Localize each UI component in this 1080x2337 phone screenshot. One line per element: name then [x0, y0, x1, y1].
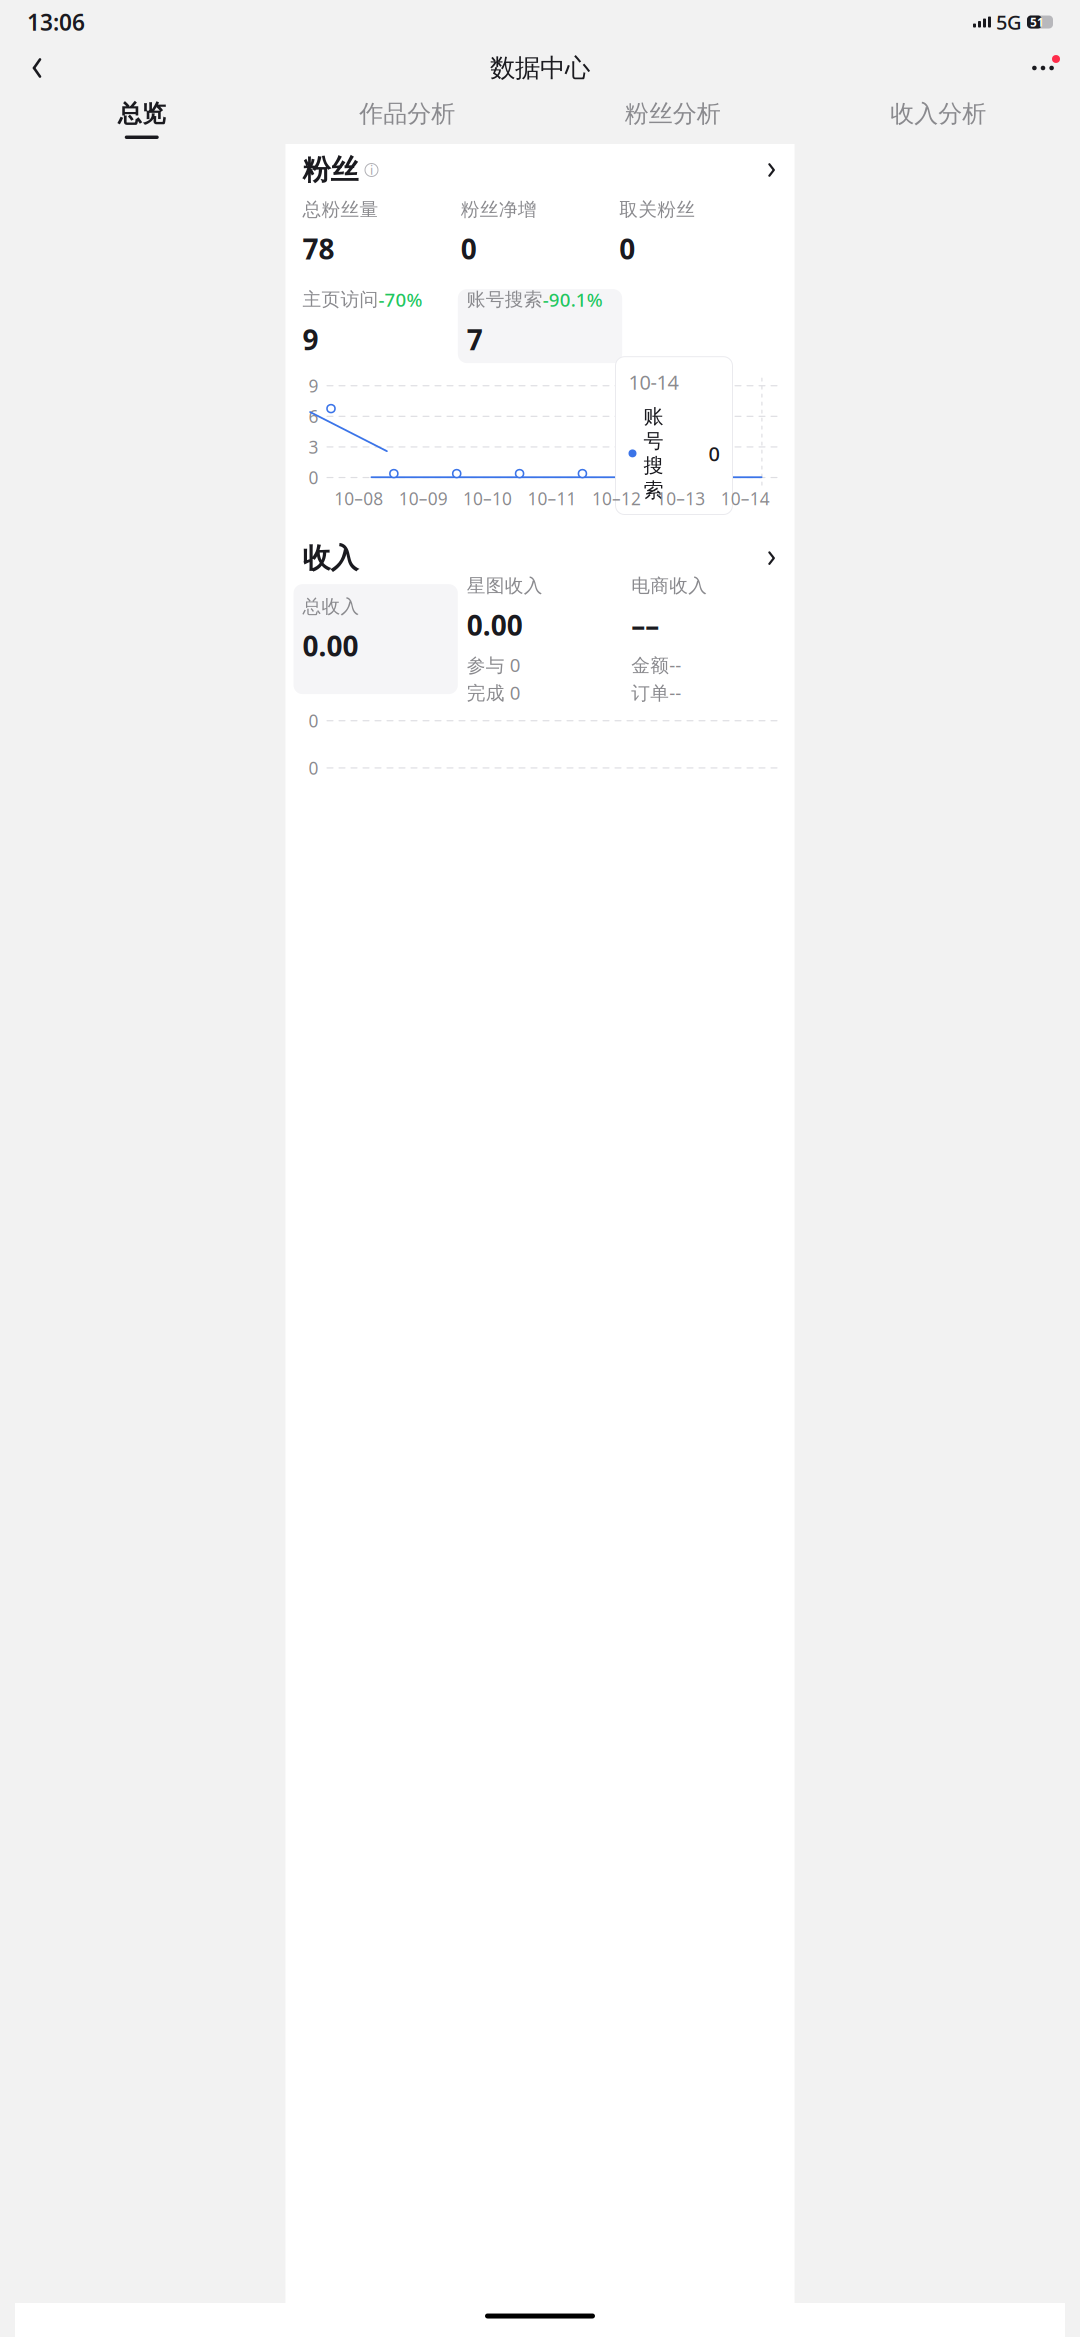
button[interactable]: 星图收入	[458, 584, 622, 694]
staticText: 0	[308, 709, 318, 732]
staticText: 账号搜索	[467, 288, 543, 311]
staticText: 0.00	[467, 606, 523, 643]
staticText: i	[370, 162, 373, 178]
staticText: 数据中心	[490, 52, 590, 83]
staticText: 星图收入	[467, 574, 543, 597]
staticText: 10–09	[399, 487, 448, 510]
staticText: 作品分析	[359, 99, 455, 128]
staticText: 订单--	[631, 680, 681, 705]
button[interactable]: 粉丝	[285, 148, 794, 192]
staticText: 总收入	[302, 595, 359, 618]
staticText: 9	[308, 374, 318, 397]
staticText: 0	[619, 230, 635, 267]
staticText: 9	[302, 321, 318, 358]
staticText: 0	[461, 230, 477, 267]
staticText: 收入	[302, 541, 358, 575]
staticText: 10–11	[527, 487, 576, 510]
staticText: 10–10	[463, 487, 512, 510]
staticText: 13:06	[27, 7, 85, 37]
staticText: 10-14	[628, 369, 678, 395]
staticText: -90.1%	[543, 287, 603, 312]
button[interactable]: 粉丝分析	[540, 92, 805, 144]
staticText: 3	[308, 435, 318, 458]
button[interactable]: 总收入	[293, 584, 458, 694]
staticText: 主页访问	[302, 288, 378, 311]
staticText: 10–08	[334, 487, 383, 510]
staticText: 总粉丝量	[302, 198, 378, 221]
staticText: 10–14	[721, 487, 770, 510]
button[interactable]: 作品分析	[274, 92, 540, 144]
staticText: 6	[308, 405, 318, 428]
staticText: 5G	[996, 9, 1022, 35]
staticText: 78	[302, 230, 334, 267]
staticText: 电商收入	[631, 574, 707, 597]
staticText: 51	[1030, 14, 1044, 30]
staticText: 7	[467, 321, 483, 358]
staticText: 收入分析	[890, 99, 986, 128]
staticText: 10–12	[592, 487, 641, 510]
button[interactable]: 主页访问	[293, 289, 458, 363]
button[interactable]: 收入分析	[805, 92, 1071, 144]
staticText: 粉丝分析	[625, 99, 721, 128]
staticText: 参与 0	[467, 652, 521, 677]
button[interactable]: 收入	[285, 536, 794, 580]
staticText: 完成 0	[467, 680, 521, 705]
staticText: 金额--	[631, 652, 681, 677]
button[interactable]: 电商收入	[622, 584, 786, 694]
staticText: 0	[708, 440, 719, 467]
button[interactable]: 账号搜索	[458, 289, 622, 363]
staticText: -70%	[378, 287, 422, 312]
staticText: 0.00	[302, 627, 358, 664]
staticText: 粉丝净增	[461, 198, 537, 221]
staticText: 账号搜索	[643, 404, 663, 503]
button[interactable]: More options	[1021, 46, 1065, 90]
staticText: 0	[308, 466, 318, 489]
button[interactable]: 总览	[9, 92, 274, 144]
staticText: 总览	[118, 99, 166, 128]
staticText: 取关粉丝	[619, 198, 695, 221]
button[interactable]: Back	[15, 46, 59, 90]
staticText: 0	[308, 756, 318, 779]
staticText: 10–13	[656, 487, 705, 510]
staticText: 粉丝	[302, 153, 358, 187]
staticText: ––	[631, 606, 659, 643]
